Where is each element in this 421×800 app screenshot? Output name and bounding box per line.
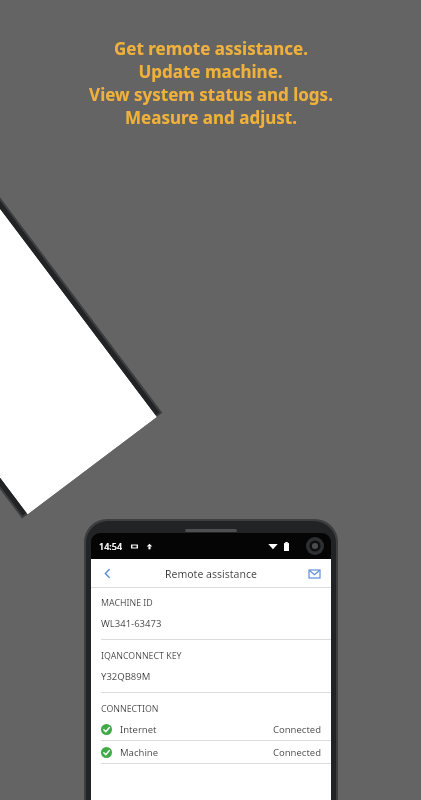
staticText: Internet	[120, 723, 157, 736]
button[interactable]: Machine	[91, 741, 331, 763]
staticText: Update machine.	[138, 60, 283, 83]
button[interactable]: Internet	[91, 718, 331, 740]
staticText: CONNECTION	[101, 703, 159, 715]
staticText: Remote assistance	[165, 567, 257, 581]
staticText: 14:54	[99, 540, 123, 552]
staticText: Measure and adjust.	[125, 106, 297, 129]
staticText: MACHINE ID	[101, 597, 153, 609]
staticText: Connected	[273, 723, 322, 736]
staticText: Machine	[120, 746, 159, 759]
staticText: View system status and logs.	[89, 83, 333, 106]
staticText: WL341-63473	[101, 617, 162, 630]
staticText: IQANCONNECT KEY	[101, 650, 182, 662]
button[interactable]: Message	[298, 559, 331, 588]
staticText: Connected	[273, 746, 322, 759]
staticText: Get remote assistance.	[114, 37, 308, 60]
staticText: Y32QB89M	[101, 670, 151, 683]
button[interactable]: Back	[91, 559, 124, 588]
